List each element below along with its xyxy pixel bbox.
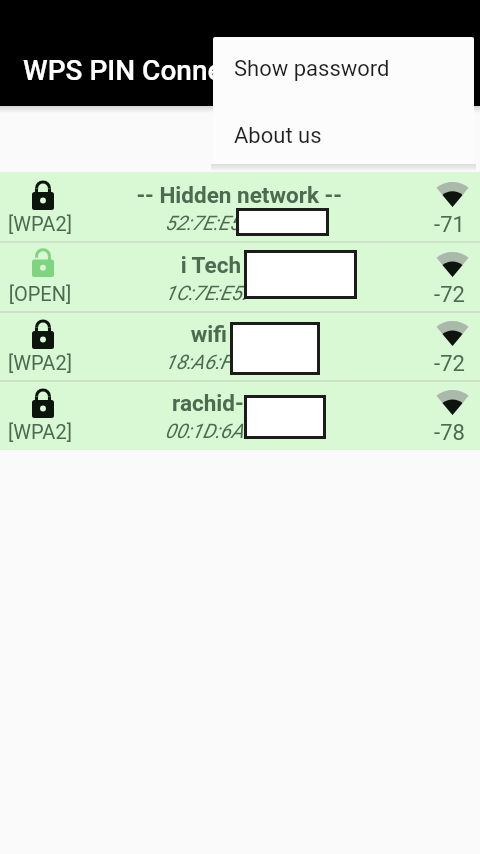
button[interactable]: Secured network	[0, 311, 480, 380]
staticText: -72	[417, 282, 480, 308]
staticText: i Tech	[0, 252, 241, 278]
button[interactable]: Secured network	[0, 380, 480, 450]
other: Secured network	[32, 390, 54, 418]
other: Signal strength	[437, 182, 468, 207]
other: Secured network	[32, 321, 54, 349]
other: Open network	[32, 250, 54, 277]
button[interactable]: Show password	[213, 37, 474, 100]
staticText: Show password	[234, 56, 390, 82]
staticText: [WPA2]	[0, 212, 80, 235]
other: Signal strength	[437, 252, 468, 277]
button[interactable]: Open network	[0, 242, 480, 311]
staticText: -72	[417, 351, 480, 377]
button[interactable]: WPS PIN Connect	[0, 0, 480, 106]
button[interactable]: PIN entry	[244, 250, 357, 299]
staticText: [WPA2]	[0, 420, 80, 443]
staticText: WPS PIN Connect	[23, 54, 247, 87]
other: Secured network	[32, 182, 54, 210]
button[interactable]: PIN entry	[236, 208, 329, 236]
other: Signal strength	[437, 390, 468, 415]
staticText: 52:7E:E5	[165, 211, 241, 234]
staticText: rachid-X	[0, 390, 258, 416]
button[interactable]: PIN entry	[230, 322, 320, 375]
staticText: -78	[417, 420, 480, 446]
staticText: 1C:7E:E5:	[165, 281, 247, 304]
button[interactable]: Secured network	[0, 172, 480, 242]
staticText: About us	[234, 123, 322, 149]
staticText: 18:A6:F	[165, 350, 231, 373]
staticText: [WPA2]	[0, 351, 80, 374]
staticText: -71	[417, 212, 480, 238]
staticText: [OPEN]	[0, 282, 80, 305]
button[interactable]: About us	[213, 100, 474, 163]
button[interactable]: PIN entry	[244, 395, 326, 439]
staticText: -- Hidden network --	[12, 182, 342, 208]
staticText: wifi	[0, 321, 227, 347]
staticText: 00:1D:6A:	[165, 419, 249, 442]
other: Signal strength	[437, 321, 468, 346]
